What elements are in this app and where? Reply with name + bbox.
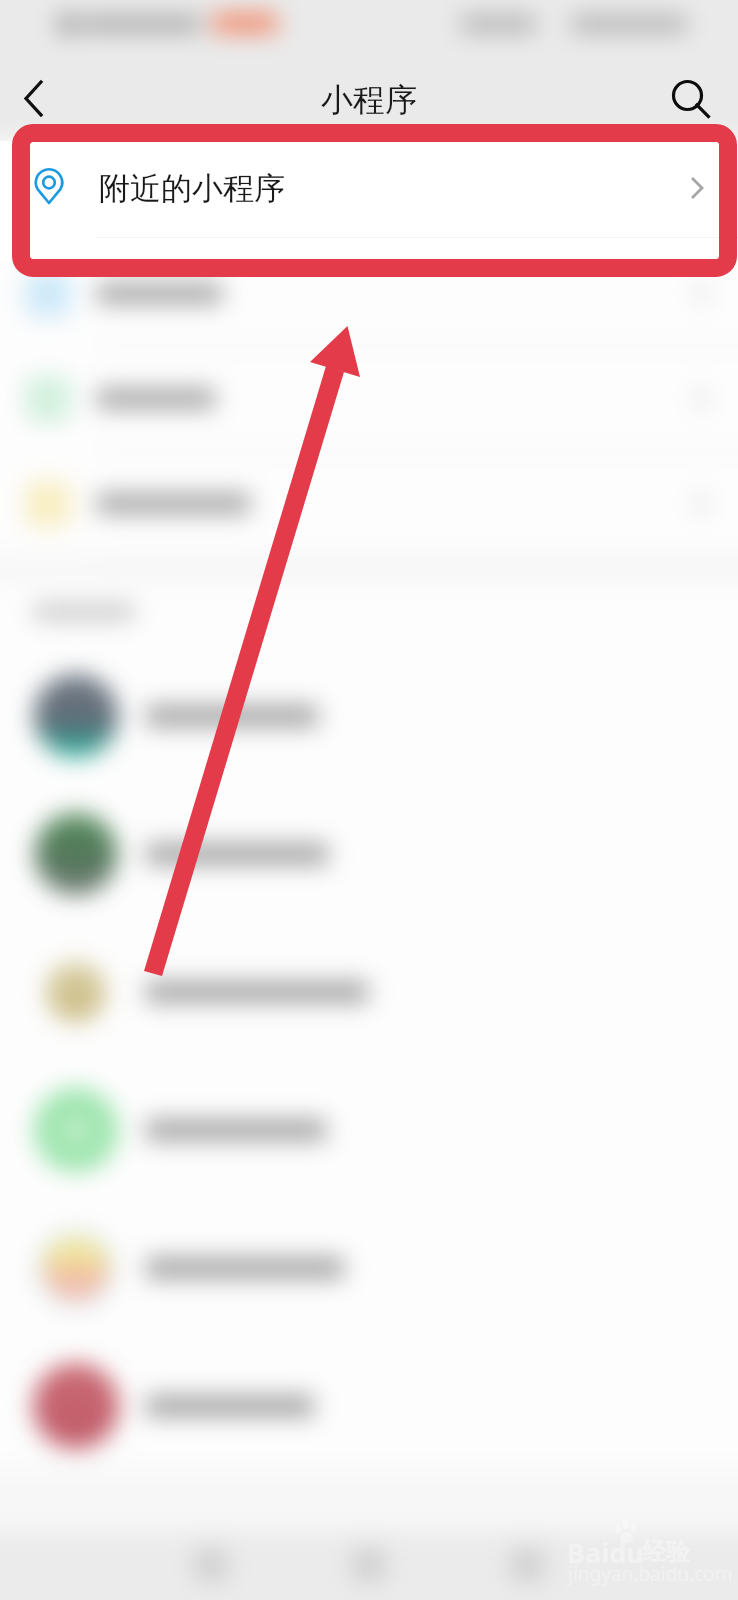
button[interactable]: Back [8, 76, 60, 128]
staticText: 小程序 [321, 80, 417, 120]
button[interactable]: Search [662, 69, 714, 121]
button[interactable]: 附近的小程序 [0, 141, 738, 260]
staticText: 附近的小程序 [99, 169, 285, 208]
